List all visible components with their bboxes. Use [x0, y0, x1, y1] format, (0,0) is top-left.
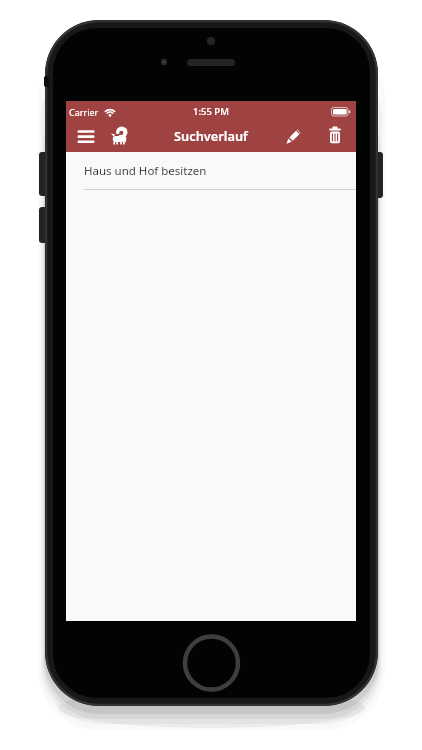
button[interactable]: Haus und Hof besitzen [66, 152, 356, 189]
button[interactable] [70, 122, 100, 152]
staticText: Suchverlauf [174, 127, 248, 144]
staticText: Carrier [69, 106, 99, 118]
staticText: 1:55 PM [193, 105, 229, 118]
button[interactable] [320, 122, 350, 152]
staticText: Haus und Hof besitzen [84, 163, 207, 179]
button[interactable] [280, 122, 310, 152]
